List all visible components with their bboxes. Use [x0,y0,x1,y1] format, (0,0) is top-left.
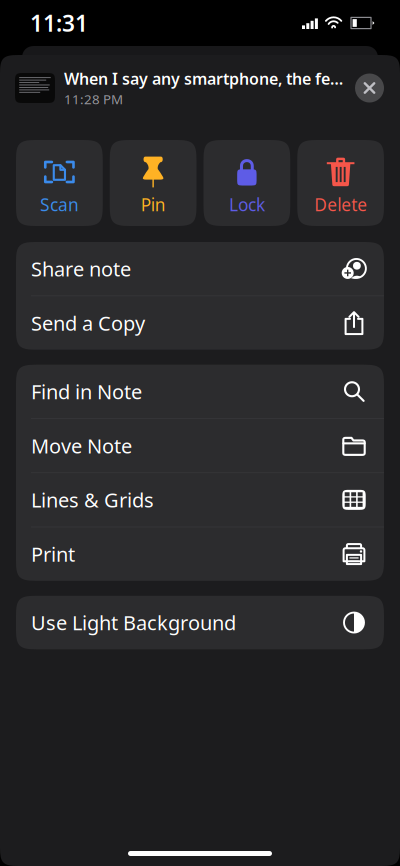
staticText: Lock [229,193,265,216]
staticText: Scan [40,193,79,216]
button[interactable]: Move Note [16,419,384,472]
button[interactable]: Scan [16,140,103,226]
button[interactable]: Send a Copy [16,296,384,350]
button[interactable]: Lock [203,140,290,226]
button[interactable]: Share note [16,242,384,295]
button[interactable]: Use Light Background [16,596,384,649]
button[interactable]: Lines & Grids [16,473,384,527]
staticText: Print [31,541,75,567]
staticText: Send a Copy [31,310,145,336]
button[interactable]: Close [355,73,384,102]
button[interactable]: Delete [297,140,384,226]
staticText: 11:28 PM [64,90,123,108]
staticText: Find in Note [31,378,142,405]
button[interactable]: Print [16,527,384,581]
button[interactable]: Pin [110,140,197,226]
staticText: Delete [314,193,367,216]
staticText: Use Light Background [31,609,236,636]
staticText: Pin [141,193,166,216]
staticText: 11:31 [30,8,88,38]
staticText: Lines & Grids [31,487,154,513]
staticText: Move Note [31,432,132,459]
staticText: When I say any smartphone, the feat… [64,68,347,89]
button[interactable]: Find in Note [16,365,384,418]
staticText: Share note [31,255,131,282]
